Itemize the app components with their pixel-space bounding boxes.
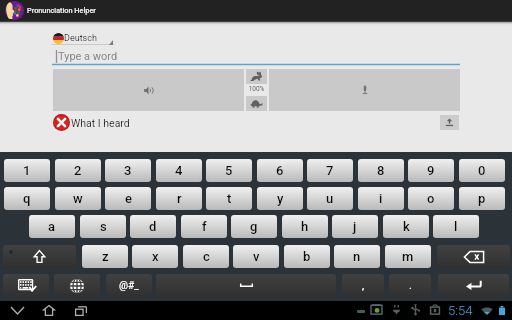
button[interactable]: f [181,215,227,238]
staticText: 3 [124,163,132,178]
staticText: Pronunciation Helper [27,6,96,15]
button[interactable]: Space [156,274,336,297]
staticText: n [353,249,361,264]
staticText: z [102,249,109,264]
staticText: h [301,219,309,234]
staticText: d [149,219,157,234]
button[interactable]: Comma [342,274,384,297]
button[interactable]: q [4,187,50,210]
button[interactable]: u [307,187,353,210]
button[interactable]: d [130,215,176,238]
staticText: 9 [427,163,435,178]
staticText: 6 [276,163,284,178]
button[interactable]: 5 [206,159,252,182]
staticText: Deutsch [64,33,97,44]
button[interactable]: r [156,187,202,210]
button[interactable]: 3 [105,159,151,182]
staticText: b [303,249,311,264]
button[interactable]: x [132,245,178,268]
button[interactable]: Hide keyboard [3,274,49,297]
button[interactable]: s [80,215,126,238]
button[interactable]: n [334,245,380,268]
staticText: Type a word [58,50,118,63]
staticText: , [362,279,365,292]
staticText: 8 [377,163,385,178]
button[interactable]: o [408,187,454,210]
button[interactable]: c [183,245,229,268]
button[interactable]: w [55,187,101,210]
button[interactable]: t [206,187,252,210]
staticText: . [409,279,412,292]
button[interactable]: Change language [54,274,100,297]
staticText: w [73,191,83,206]
staticText: What I heard [71,117,130,129]
button[interactable]: Faster [246,69,267,84]
staticText: l [454,219,458,234]
staticText: v [253,249,260,264]
button[interactable]: p [459,187,505,210]
staticText: 7 [326,163,334,178]
button[interactable]: Back [6,303,28,318]
staticText: a [48,219,56,234]
button[interactable]: 6 [257,159,303,182]
staticText: 2 [74,163,82,178]
staticText: u [326,191,334,206]
button[interactable]: k [383,215,429,238]
button[interactable]: Period [389,274,431,297]
staticText: t [227,191,232,206]
button[interactable]: Symbols [106,274,152,297]
staticText: i [379,191,383,206]
button[interactable]: Share [440,115,459,130]
button[interactable]: 1 [4,159,50,182]
staticText: 0 [478,163,486,178]
button[interactable]: Enter [438,274,509,297]
staticText: r [177,191,182,206]
staticText: j [353,219,357,234]
staticText: 1 [23,163,31,178]
button[interactable]: m [385,245,431,268]
button[interactable]: Deutsch [53,32,115,44]
button[interactable]: l [433,215,479,238]
button[interactable]: 9 [408,159,454,182]
staticText: c [203,249,210,264]
button[interactable]: 0 [459,159,505,182]
staticText: k [403,219,410,234]
button[interactable]: Backspace [437,245,510,268]
staticText: s [100,219,107,234]
staticText: 5 [225,163,233,178]
staticText: 4 [175,163,183,178]
button[interactable]: b [284,245,330,268]
button[interactable]: e [105,187,151,210]
button[interactable]: 7 [307,159,353,182]
staticText: x [152,249,159,264]
staticText: q [23,191,31,206]
button[interactable]: z [82,245,128,268]
button[interactable]: Recents [70,303,92,318]
button[interactable]: Slower [246,96,267,111]
staticText: y [277,191,284,206]
staticText: p [478,191,486,206]
staticText: m [402,249,414,264]
button[interactable]: 2 [55,159,101,182]
staticText: e [125,191,132,206]
staticText: o [427,191,435,206]
staticText: g [250,219,258,234]
staticText: 100% [246,85,267,93]
button[interactable]: Shift [3,245,76,268]
button[interactable]: 4 [156,159,202,182]
button[interactable]: 8 [358,159,404,182]
button[interactable]: Home [38,303,60,318]
button[interactable]: Record [269,69,460,111]
staticText: 5:54 [448,303,473,318]
button[interactable]: h [282,215,328,238]
button[interactable]: j [332,215,378,238]
button[interactable]: y [257,187,303,210]
button[interactable]: i [358,187,404,210]
staticText: f [202,219,207,234]
staticText: @#_ [119,280,139,292]
button[interactable]: Play [53,69,244,111]
button[interactable]: v [233,245,279,268]
button[interactable]: a [29,215,75,238]
button[interactable]: What I heard [53,114,130,131]
button[interactable]: g [231,215,277,238]
